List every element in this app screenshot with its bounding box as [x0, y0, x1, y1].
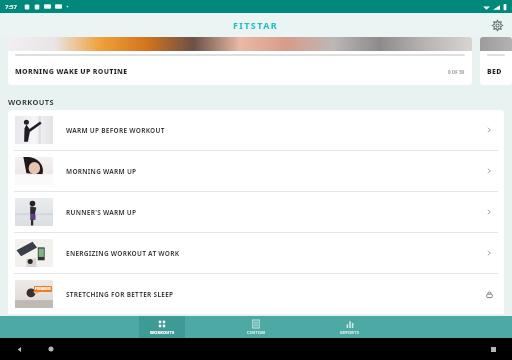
staticText: REPORTS	[340, 330, 360, 335]
button[interactable]: REPORTS	[327, 316, 373, 338]
button[interactable]: PREMIUM	[8, 274, 504, 314]
button[interactable]: WARM UP BEFORE WORKOUT	[8, 110, 504, 150]
button[interactable]: Home	[44, 342, 58, 356]
staticText: 7:57	[5, 3, 17, 11]
staticText: MORNING WARM UP	[66, 167, 482, 176]
staticText: CUSTOM	[247, 330, 266, 335]
staticText: WARM UP BEFORE WORKOUT	[66, 126, 482, 135]
staticText: BEDTIME	[487, 67, 505, 77]
button[interactable]: Back	[12, 342, 26, 356]
button[interactable]: MORNING WAKE UP ROUTINE	[8, 37, 472, 85]
button[interactable]: BEDTIME	[480, 37, 512, 85]
staticText: ENERGIZING WORKOUT AT WORK	[66, 249, 482, 258]
staticText: 0 OF 30	[448, 69, 465, 75]
staticText: PREMIUM	[35, 287, 51, 291]
staticText: WORKOUTS	[150, 330, 175, 335]
button[interactable]: MORNING WARM UP	[8, 151, 504, 191]
button[interactable]: WORKOUTS	[139, 316, 185, 338]
staticText: STRETCHING FOR BETTER SLEEP	[66, 290, 482, 299]
button[interactable]: CUSTOM	[233, 316, 279, 338]
button[interactable]: Settings	[488, 16, 506, 34]
staticText: FITSTAR	[233, 19, 279, 31]
button[interactable]: RUNNER'S WARM UP	[8, 192, 504, 232]
staticText: WORKOUTS	[8, 97, 55, 107]
button[interactable]: Recent apps	[486, 342, 500, 356]
button[interactable]: ENERGIZING WORKOUT AT WORK	[8, 233, 504, 273]
staticText: MORNING WAKE UP ROUTINE	[15, 67, 128, 77]
staticText: RUNNER'S WARM UP	[66, 208, 482, 217]
